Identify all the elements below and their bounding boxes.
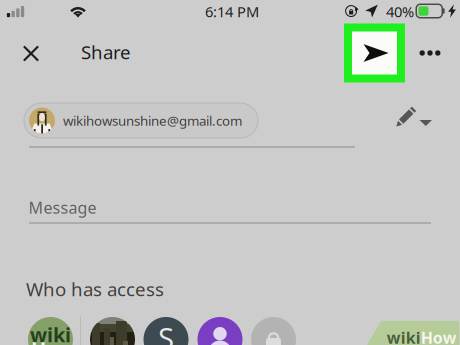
staticText: wiki — [30, 321, 71, 345]
button[interactable]: Close — [8, 30, 54, 76]
button[interactable]: More options — [410, 31, 450, 75]
staticText: How — [421, 327, 457, 345]
staticText: Share — [81, 40, 131, 64]
staticText: 6:14 PM — [205, 2, 259, 21]
button[interactable]: Send — [344, 23, 405, 82]
staticText: wikihowsunshine@gmail.com — [63, 112, 242, 129]
staticText: 40% — [386, 2, 414, 21]
staticText: wiki — [387, 327, 421, 345]
button[interactable]: Edit recipients — [386, 95, 442, 139]
staticText: Who has access — [26, 277, 164, 301]
button[interactable]: wikihowsunshine@gmail.com — [24, 103, 258, 138]
staticText: S — [158, 318, 174, 345]
staticText: H — [31, 335, 46, 345]
staticText: Message — [28, 197, 96, 218]
